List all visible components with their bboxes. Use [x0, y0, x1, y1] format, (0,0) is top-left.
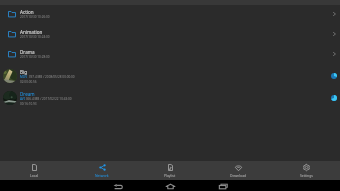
- staticText: 366.4 MB / 2017/02/22 10:43:00: [25, 97, 72, 101]
- staticText: 397.4 MB / 2008/05/28 00:00:00: [28, 75, 75, 79]
- staticText: Download: [230, 173, 247, 178]
- staticText: 00:16:10.93: [20, 102, 37, 106]
- button[interactable]: Animation: [0, 24, 340, 44]
- other: Playback progress for Big: [328, 65, 340, 87]
- button[interactable]: Network: [68, 161, 136, 180]
- staticText: Drama: [20, 49, 35, 55]
- staticText: Network: [95, 173, 109, 178]
- other: Playback progress for Dream: [328, 87, 340, 109]
- staticText: Action: [20, 9, 34, 15]
- staticText: Settings: [300, 173, 313, 178]
- button[interactable]: Local: [0, 161, 68, 180]
- other: Open folder Drama: [328, 44, 340, 64]
- button[interactable]: Action: [0, 4, 340, 24]
- staticText: AVI: [20, 97, 25, 101]
- staticText: Playlist: [164, 173, 176, 178]
- button[interactable]: Big: [0, 65, 340, 87]
- button[interactable]: Playlist: [136, 161, 204, 180]
- staticText: 2017/10/30 10:26:00: [20, 15, 50, 19]
- button[interactable]: Settings: [272, 161, 340, 180]
- staticText: 2017/10/30 10:28:00: [20, 55, 50, 59]
- other: Open folder Animation: [328, 24, 340, 44]
- button[interactable]: Recents: [213, 181, 233, 191]
- staticText: Local: [30, 173, 39, 178]
- staticText: Big: [20, 69, 27, 75]
- button[interactable]: Home: [160, 181, 180, 191]
- staticText: MOV: [20, 75, 28, 79]
- button[interactable]: Back: [107, 181, 127, 191]
- button[interactable]: Drama: [0, 44, 340, 64]
- staticText: Dream: [20, 91, 35, 97]
- staticText: Animation: [20, 29, 43, 35]
- button[interactable]: Download: [204, 161, 272, 180]
- other: Open folder Action: [328, 4, 340, 24]
- button[interactable]: Dream: [0, 87, 340, 109]
- staticText: 02:00:00.56: [20, 80, 37, 84]
- staticText: 2017/10/30 10:24:00: [20, 35, 50, 39]
